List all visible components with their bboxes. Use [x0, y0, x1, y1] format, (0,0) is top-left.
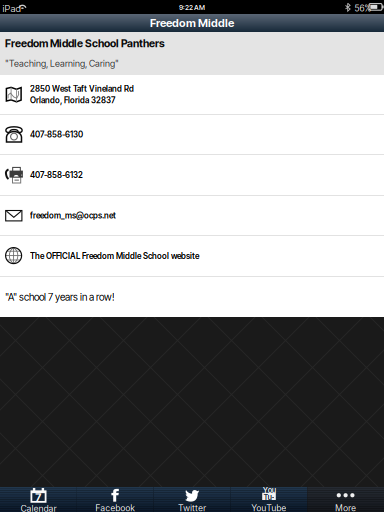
staticText: 407-858-6132 — [30, 170, 83, 180]
staticText: 7 — [35, 491, 41, 504]
staticText: freedom_ms@ocps.net — [30, 211, 116, 220]
staticText: Freedom Middle — [150, 16, 234, 30]
staticText: Facebook — [95, 503, 135, 512]
button[interactable]: More — [307, 487, 384, 512]
staticText: 407-858-6130 — [30, 130, 83, 139]
staticText: "Teaching, Learning, Caring" — [5, 58, 119, 69]
staticText: 9:22 AM — [179, 3, 205, 12]
staticText: Twitter — [178, 503, 206, 512]
staticText: More — [335, 503, 356, 512]
staticText: Orlando, Florida 32837 — [30, 95, 115, 105]
button[interactable]: Facebook — [77, 487, 154, 512]
button[interactable]: freedom_ms@ocps.net — [0, 196, 384, 235]
button[interactable]: 2850 West Taft Vineland Rd — [0, 75, 384, 114]
button[interactable]: 407-858-6130 — [0, 115, 384, 154]
staticText: "A" school 7 years in a row! — [5, 291, 115, 303]
staticText: YouTube — [251, 503, 286, 512]
staticText: Calendar — [20, 503, 56, 512]
button[interactable]: 407-858-6132 — [0, 155, 384, 195]
staticText: 2850 West Taft Vineland Rd — [30, 84, 134, 94]
button[interactable]: The OFFICIAL Freedom Middle School websi… — [0, 236, 384, 276]
staticText: Tube — [263, 493, 274, 510]
staticText: You — [263, 486, 276, 495]
button[interactable]: 7 — [0, 487, 77, 512]
staticText: Freedom Middle School Panthers — [5, 37, 165, 50]
button[interactable]: Twitter — [154, 487, 230, 512]
staticText: 56% — [354, 3, 371, 14]
staticText: The OFFICIAL Freedom Middle School websi… — [30, 251, 199, 261]
staticText: iPad — [2, 3, 20, 14]
button[interactable]: You — [230, 487, 307, 512]
